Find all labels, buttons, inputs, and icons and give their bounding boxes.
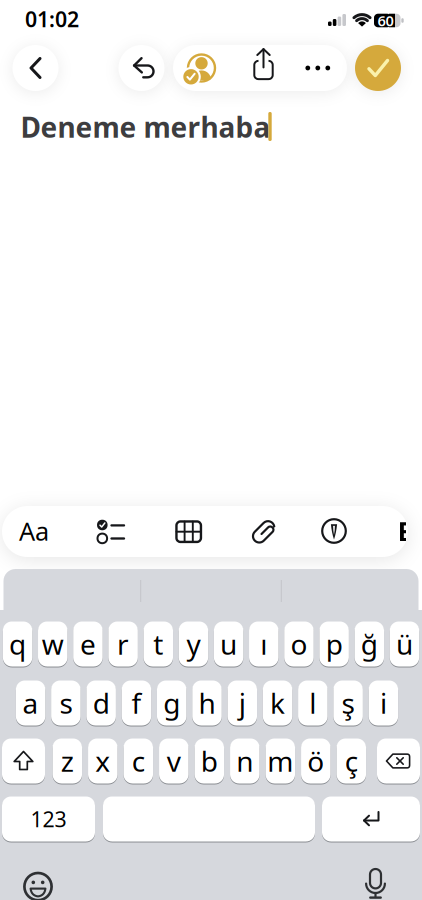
- button[interactable]: [355, 45, 401, 91]
- staticText: ı: [260, 625, 267, 663]
- staticText: b: [201, 742, 218, 780]
- button[interactable]: [103, 795, 315, 843]
- staticText: l: [309, 684, 316, 722]
- button[interactable]: ö: [301, 737, 331, 785]
- button[interactable]: q: [3, 620, 32, 668]
- staticText: d: [93, 684, 110, 722]
- button[interactable]: [240, 43, 286, 89]
- button[interactable]: [295, 45, 341, 91]
- button[interactable]: [23, 871, 53, 900]
- button[interactable]: l: [298, 679, 328, 727]
- button[interactable]: n: [230, 737, 260, 785]
- button[interactable]: 123: [2, 795, 95, 843]
- staticText: B: [397, 513, 415, 549]
- button[interactable]: c: [124, 737, 153, 785]
- staticText: f: [131, 684, 141, 722]
- button[interactable]: p: [319, 620, 349, 668]
- button[interactable]: a: [16, 679, 45, 727]
- button[interactable]: [317, 514, 351, 548]
- button[interactable]: u: [214, 620, 243, 668]
- button[interactable]: x: [88, 737, 117, 785]
- staticText: h: [198, 684, 215, 722]
- button[interactable]: ı: [249, 620, 278, 668]
- button[interactable]: f: [122, 679, 151, 727]
- button[interactable]: ç: [337, 737, 366, 785]
- button[interactable]: w: [38, 620, 67, 668]
- button[interactable]: [180, 49, 220, 89]
- staticText: ş: [342, 684, 355, 722]
- staticText: Deneme merhaba: [20, 108, 270, 146]
- button[interactable]: g: [157, 679, 186, 727]
- button[interactable]: e: [73, 620, 103, 668]
- staticText: ğ: [361, 625, 378, 663]
- button[interactable]: [377, 737, 420, 785]
- button[interactable]: i: [369, 679, 398, 727]
- button[interactable]: Aa: [14, 511, 54, 551]
- button[interactable]: [359, 866, 391, 900]
- staticText: k: [270, 684, 285, 722]
- staticText: 01:02: [25, 5, 79, 33]
- staticText: 123: [30, 805, 66, 833]
- staticText: ü: [396, 625, 413, 663]
- staticText: p: [326, 625, 343, 663]
- button[interactable]: [93, 514, 127, 548]
- button[interactable]: y: [179, 620, 208, 668]
- button[interactable]: ü: [390, 620, 419, 668]
- staticText: x: [95, 742, 110, 780]
- staticText: y: [186, 625, 200, 663]
- staticText: e: [80, 625, 96, 663]
- staticText: m: [267, 742, 293, 780]
- staticText: c: [132, 742, 145, 780]
- button[interactable]: ş: [333, 679, 363, 727]
- staticText: 60: [377, 11, 393, 30]
- button[interactable]: s: [51, 679, 81, 727]
- button[interactable]: b: [195, 737, 224, 785]
- button[interactable]: k: [263, 679, 292, 727]
- staticText: q: [9, 625, 26, 663]
- staticText: a: [23, 684, 39, 722]
- button[interactable]: ğ: [355, 620, 384, 668]
- button[interactable]: h: [192, 679, 222, 727]
- button[interactable]: [172, 515, 206, 549]
- staticText: o: [290, 625, 307, 663]
- button[interactable]: z: [52, 737, 82, 785]
- button[interactable]: d: [86, 679, 116, 727]
- staticText: s: [59, 684, 72, 722]
- staticText: ö: [307, 742, 324, 780]
- staticText: g: [163, 684, 180, 722]
- staticText: ç: [345, 742, 358, 780]
- button[interactable]: B: [397, 511, 405, 551]
- staticText: i: [380, 684, 387, 722]
- button[interactable]: [12, 45, 58, 91]
- staticText: Aa: [19, 514, 49, 548]
- staticText: t: [153, 625, 163, 663]
- button[interactable]: [246, 513, 282, 549]
- staticText: j: [239, 684, 246, 722]
- staticText: u: [220, 625, 237, 663]
- button[interactable]: t: [143, 620, 173, 668]
- button[interactable]: [322, 795, 420, 843]
- button[interactable]: [118, 45, 164, 91]
- button[interactable]: o: [284, 620, 314, 668]
- staticText: w: [42, 625, 64, 663]
- staticText: z: [61, 742, 74, 780]
- staticText: r: [117, 625, 129, 663]
- staticText: v: [167, 742, 181, 780]
- staticText: n: [236, 742, 253, 780]
- button[interactable]: [2, 737, 45, 785]
- button[interactable]: j: [227, 679, 257, 727]
- button[interactable]: r: [108, 620, 138, 668]
- button[interactable]: v: [159, 737, 189, 785]
- button[interactable]: m: [266, 737, 295, 785]
